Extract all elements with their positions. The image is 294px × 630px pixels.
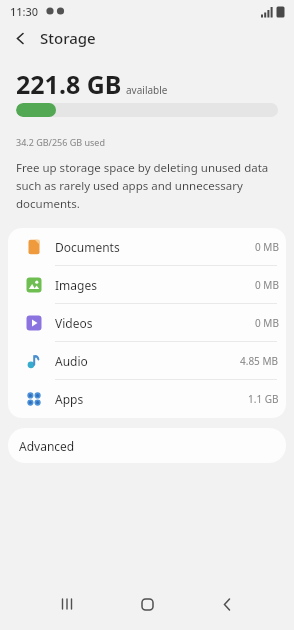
staticText: Advanced — [19, 438, 75, 454]
button[interactable]: Documents — [8, 228, 286, 266]
staticText: 0 MB — [255, 316, 279, 330]
staticText: Apps — [55, 391, 84, 407]
button[interactable] — [123, 580, 171, 628]
staticText: 11:30 — [10, 4, 39, 19]
staticText: Storage — [40, 28, 96, 48]
button[interactable] — [43, 580, 91, 628]
button[interactable]: Videos — [8, 304, 286, 342]
button[interactable]: Advanced — [8, 428, 286, 463]
button[interactable]: Audio — [8, 342, 286, 380]
button[interactable]: Images — [8, 266, 286, 304]
staticText: 4.85 MB — [240, 354, 279, 368]
staticText: Videos — [55, 315, 93, 331]
staticText: Images — [55, 277, 97, 293]
staticText: Free up storage space by deleting unused… — [16, 160, 269, 211]
staticText: 34.2 GB/256 GB used — [16, 136, 105, 148]
staticText: 221.8 GB — [16, 67, 122, 101]
button[interactable]: Apps — [8, 380, 286, 418]
staticText: 0 MB — [255, 240, 279, 254]
staticText: 1.1 GB — [248, 392, 279, 406]
button[interactable] — [203, 580, 251, 628]
button[interactable] — [0, 22, 40, 54]
staticText: Audio — [55, 353, 88, 369]
staticText: available — [126, 83, 168, 97]
staticText: 0 MB — [255, 278, 279, 292]
staticText: Documents — [55, 239, 120, 255]
